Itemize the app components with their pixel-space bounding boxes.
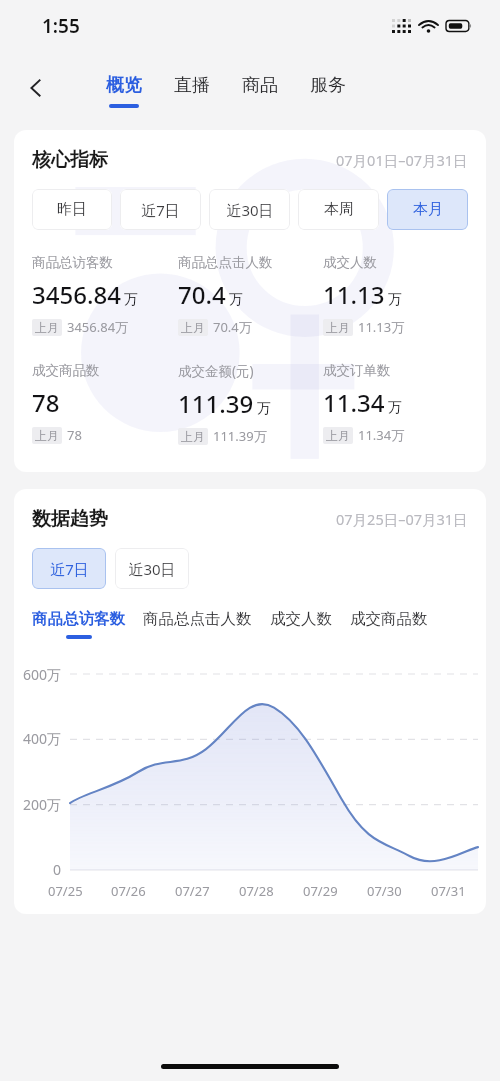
staticText: 成交商品数 — [350, 609, 428, 629]
staticText: 上月 — [181, 320, 205, 335]
staticText: 07/31 — [431, 882, 466, 900]
staticText: 商品总点击人数 — [143, 609, 252, 629]
staticText: 78 — [67, 426, 82, 444]
staticText: 78 — [32, 386, 60, 419]
staticText: 核心指标 — [32, 148, 108, 172]
staticText: 万 — [229, 291, 243, 309]
staticText: 07月01日–07月31日 — [336, 150, 468, 170]
button[interactable]: 商品总点击人数 — [143, 609, 270, 639]
button[interactable]: 本月 — [387, 189, 468, 230]
staticText: 近7日 — [141, 200, 180, 220]
button[interactable]: 昨日 — [32, 189, 112, 230]
staticText: 商品总点击人数 — [178, 254, 273, 271]
staticText: 400万 — [23, 729, 62, 748]
staticText: 成交订单数 — [323, 362, 391, 379]
staticText: 1:55 — [42, 13, 80, 39]
staticText: 成交人数 — [323, 254, 377, 271]
staticText: 商品 — [242, 74, 278, 97]
staticText: 600万 — [23, 665, 62, 684]
button[interactable]: 近7日 — [120, 189, 201, 230]
button[interactable]: Back — [14, 66, 58, 110]
button[interactable]: 成交商品数 — [350, 609, 428, 639]
staticText: 11.34 — [323, 386, 385, 419]
staticText: 70.4万 — [213, 318, 252, 336]
staticText: 本周 — [324, 200, 354, 219]
staticText: 成交人数 — [270, 609, 332, 629]
staticText: 本月 — [413, 200, 443, 219]
button[interactable]: 商品 — [226, 70, 294, 112]
staticText: 07/30 — [367, 882, 402, 900]
staticText: 近30日 — [128, 559, 176, 579]
button[interactable]: 直播 — [158, 70, 226, 112]
staticText: 07/26 — [111, 882, 146, 900]
staticText: 上月 — [35, 428, 59, 443]
button[interactable]: 近7日 — [32, 548, 106, 589]
staticText: 商品总访客数 — [32, 254, 113, 271]
staticText: 07/28 — [239, 882, 274, 900]
staticText: 07/27 — [175, 882, 210, 900]
button[interactable]: 成交人数 — [270, 609, 350, 639]
staticText: 11.13 — [323, 278, 385, 311]
staticText: 上月 — [181, 429, 205, 444]
staticText: 11.13万 — [358, 318, 405, 336]
button[interactable]: 近30日 — [209, 189, 290, 230]
button[interactable]: 商品总访客数 — [32, 609, 143, 639]
staticText: 70.4 — [178, 278, 226, 311]
staticText: 07/25 — [48, 882, 83, 900]
staticText: 数据趋势 — [32, 507, 108, 531]
staticText: 万 — [257, 400, 271, 418]
staticText: 上月 — [326, 428, 350, 443]
button[interactable]: 概览 — [90, 70, 158, 112]
staticText: 服务 — [310, 74, 346, 97]
staticText: 上月 — [326, 320, 350, 335]
staticText: 近7日 — [50, 559, 89, 579]
staticText: 近30日 — [226, 200, 274, 220]
staticText: 万 — [388, 291, 402, 309]
staticText: 万 — [124, 291, 138, 309]
staticText: 昨日 — [57, 200, 87, 219]
staticText: 商品总访客数 — [32, 609, 125, 629]
staticText: 07/29 — [303, 882, 338, 900]
button[interactable]: 服务 — [294, 70, 362, 112]
staticText: 直播 — [174, 74, 210, 97]
staticText: 11.34万 — [358, 426, 405, 444]
button[interactable]: 本周 — [298, 189, 379, 230]
staticText: 3456.84 — [32, 278, 121, 311]
staticText: 111.39 — [178, 387, 254, 420]
staticText: 成交商品数 — [32, 362, 100, 379]
staticText: 成交金额(元) — [178, 362, 254, 380]
staticText: 07月25日–07月31日 — [336, 509, 468, 529]
staticText: 概览 — [106, 74, 142, 97]
staticText: 0 — [53, 860, 62, 879]
staticText: 200万 — [23, 795, 62, 814]
staticText: 3456.84万 — [67, 318, 129, 336]
staticText: 111.39万 — [213, 427, 267, 445]
staticText: 万 — [388, 399, 402, 417]
staticText: 上月 — [35, 320, 59, 335]
button[interactable]: 近30日 — [115, 548, 189, 589]
